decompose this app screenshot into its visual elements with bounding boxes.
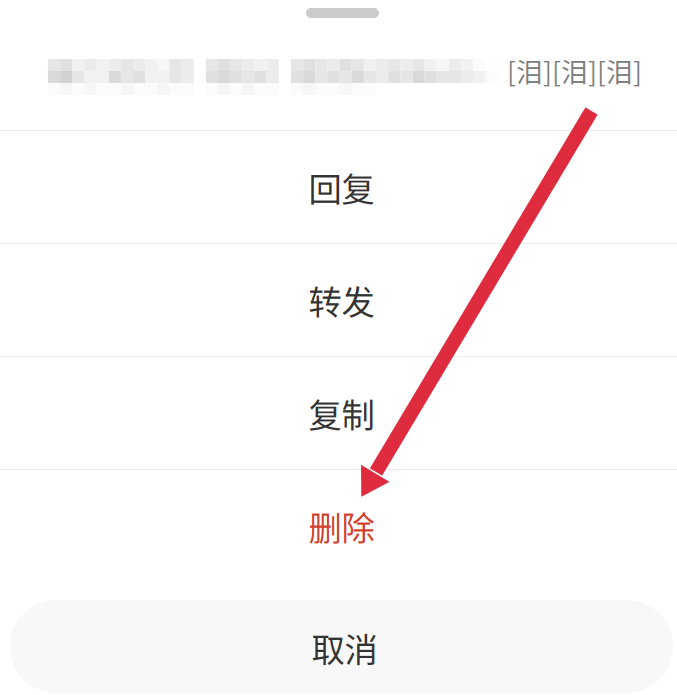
staticText: 删除 bbox=[308, 502, 374, 550]
button[interactable]: 复制 bbox=[0, 357, 677, 469]
button[interactable]: 转发 bbox=[0, 244, 677, 356]
staticText: 回复 bbox=[308, 163, 374, 211]
button[interactable]: 回复 bbox=[0, 131, 677, 243]
staticText: [泪][泪][泪] bbox=[507, 51, 642, 90]
button[interactable]: 取消 bbox=[7, 600, 670, 693]
staticText: 复制 bbox=[308, 389, 374, 437]
button[interactable]: 删除 bbox=[0, 470, 677, 582]
staticText: 转发 bbox=[308, 276, 374, 324]
staticText: 取消 bbox=[311, 623, 377, 672]
